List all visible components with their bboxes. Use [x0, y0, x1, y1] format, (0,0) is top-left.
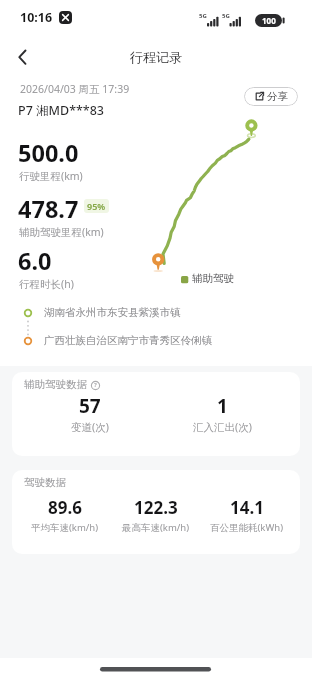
staticText: 汇入汇出(次) [193, 420, 252, 434]
staticText: 行程记录 [130, 49, 182, 65]
staticText: 辅助驾驶数据 [24, 378, 87, 391]
staticText: 最高车速(km/h) [122, 521, 190, 534]
button[interactable]: 辅助驾驶数据 [12, 372, 300, 456]
staticText: 湖南省永州市东安县紫溪市镇 [44, 306, 181, 319]
staticText: 平均车速(km/h) [31, 521, 99, 534]
staticText: 5G [199, 12, 207, 20]
staticText: 驾驶数据 [24, 476, 66, 489]
staticText: 行驶里程(km) [19, 169, 83, 183]
button[interactable]: 驾驶数据 [12, 470, 300, 554]
staticText: 100 [262, 15, 276, 26]
button[interactable]: 分享 [244, 87, 298, 106]
staticText: 95% [87, 200, 106, 212]
staticText: 广西壮族自治区南宁市青秀区伶俐镇 [44, 334, 212, 347]
staticText: 478.7 [18, 193, 79, 225]
staticText: 89.6 [48, 496, 82, 519]
button[interactable] [10, 44, 38, 72]
staticText: 122.3 [134, 496, 178, 519]
staticText: 5G [222, 12, 230, 20]
staticText: 辅助驾驶里程(km) [19, 225, 104, 239]
staticText: 10:16 [20, 9, 53, 26]
staticText: 6.0 [18, 245, 52, 277]
staticText: 2026/04/03 周五 17:39 [20, 82, 130, 96]
staticText: 57 [79, 393, 101, 419]
staticText: 1 [217, 393, 228, 419]
staticText: 500.0 [18, 137, 79, 169]
staticText: 百公里能耗(kWh) [210, 521, 283, 534]
staticText: P7 湘MD***83 [18, 102, 104, 119]
staticText: 辅助驾驶 [192, 272, 234, 285]
staticText: 行程时长(h) [19, 277, 74, 291]
staticText: ? [94, 381, 97, 389]
staticText: 14.1 [230, 496, 264, 519]
staticText: 变道(次) [71, 420, 109, 434]
staticText: 分享 [267, 90, 288, 103]
